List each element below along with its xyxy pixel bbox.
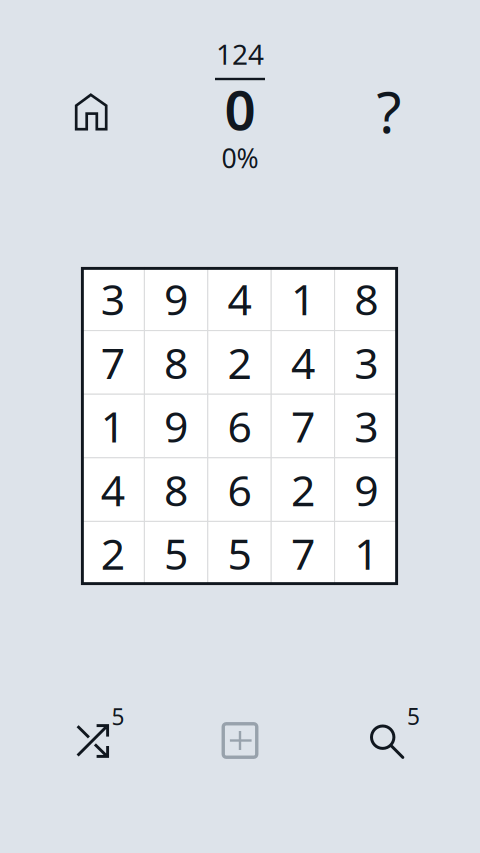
staticText: 4 <box>291 334 315 391</box>
staticText: 2 <box>291 461 315 518</box>
button[interactable]: Search <box>365 707 427 769</box>
staticText: 3 <box>354 398 378 454</box>
button[interactable]: 9 <box>144 267 208 331</box>
staticText: 1 <box>354 525 378 582</box>
staticText: 1 <box>101 398 125 454</box>
staticText: 8 <box>354 270 378 327</box>
staticText: 3 <box>354 334 378 391</box>
button[interactable]: Add <box>214 714 266 766</box>
staticText: 4 <box>101 461 125 518</box>
staticText: 8 <box>164 461 188 518</box>
button[interactable]: Home <box>74 93 108 131</box>
button[interactable]: 4 <box>271 331 335 394</box>
button[interactable]: 3 <box>81 267 144 331</box>
button[interactable]: 2 <box>208 331 271 394</box>
button[interactable]: 7 <box>81 331 144 394</box>
staticText: 0% <box>221 140 258 176</box>
staticText: 2 <box>101 525 125 582</box>
button[interactable]: 6 <box>208 394 271 458</box>
staticText: 8 <box>164 334 188 391</box>
button[interactable]: 4 <box>81 458 144 521</box>
button[interactable]: 6 <box>208 458 271 521</box>
staticText: 9 <box>164 398 188 454</box>
button[interactable]: 8 <box>335 267 398 331</box>
button[interactable]: 1 <box>335 521 398 585</box>
button[interactable]: 3 <box>335 331 398 394</box>
button[interactable]: 7 <box>271 521 335 585</box>
button[interactable]: 8 <box>144 458 208 521</box>
staticText: 5 <box>164 525 188 582</box>
staticText: 7 <box>291 525 315 582</box>
staticText: 1 <box>291 270 315 327</box>
staticText: 7 <box>291 398 315 454</box>
staticText: 2 <box>227 334 251 391</box>
button[interactable]: 8 <box>144 331 208 394</box>
button[interactable]: 9 <box>335 458 398 521</box>
staticText: 9 <box>354 461 378 518</box>
staticText: 124 <box>216 35 264 73</box>
staticText: 5 <box>407 701 420 731</box>
button[interactable]: 5 <box>144 521 208 585</box>
staticText: 6 <box>227 461 251 518</box>
button[interactable]: 1 <box>271 267 335 331</box>
staticText: ? <box>376 73 401 149</box>
button[interactable]: 4 <box>208 267 271 331</box>
button[interactable]: 1 <box>81 394 144 458</box>
staticText: 5 <box>227 525 251 582</box>
staticText: 7 <box>101 334 125 391</box>
staticText: 6 <box>227 398 251 454</box>
staticText: 3 <box>101 270 125 327</box>
staticText: 0 <box>224 73 255 145</box>
button[interactable]: 2 <box>271 458 335 521</box>
staticText: 9 <box>164 270 188 327</box>
button[interactable]: 3 <box>335 394 398 458</box>
button[interactable]: Help <box>376 73 401 149</box>
staticText: 5 <box>111 701 124 731</box>
staticText: 4 <box>227 270 251 327</box>
button[interactable]: 5 <box>208 521 271 585</box>
button[interactable]: 2 <box>81 521 144 585</box>
button[interactable]: 9 <box>144 394 208 458</box>
button[interactable]: 7 <box>271 394 335 458</box>
button[interactable]: Shuffle <box>76 707 138 769</box>
